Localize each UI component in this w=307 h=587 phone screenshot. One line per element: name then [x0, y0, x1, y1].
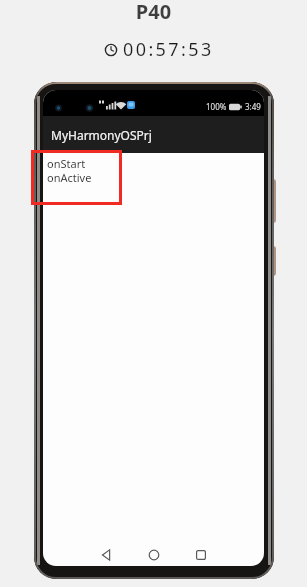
staticText: 00:57:53	[123, 37, 214, 62]
staticText: MyHarmonyOSPrj	[51, 127, 152, 143]
button[interactable]	[83, 545, 130, 565]
button[interactable]	[130, 545, 177, 565]
staticText: 100%	[206, 101, 227, 112]
staticText: 3:49	[245, 101, 261, 112]
staticText: onStart onActive	[47, 156, 92, 185]
button[interactable]	[177, 545, 224, 565]
button[interactable]	[31, 150, 122, 205]
staticText: P40	[0, 0, 307, 25]
